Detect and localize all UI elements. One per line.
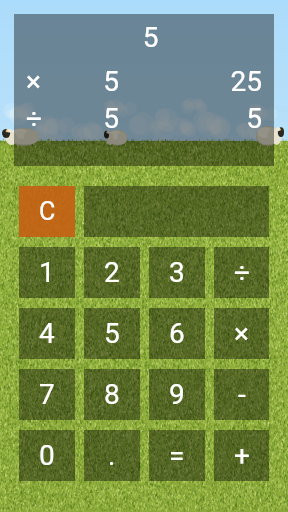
button[interactable]: + bbox=[214, 430, 269, 481]
staticText: = bbox=[169, 439, 185, 472]
staticText: ÷ bbox=[26, 102, 42, 135]
staticText: 5 bbox=[174, 102, 262, 135]
button[interactable]: - bbox=[214, 369, 269, 420]
staticText: 8 bbox=[104, 378, 120, 411]
staticText: × bbox=[26, 65, 41, 98]
button[interactable]: 1 bbox=[19, 247, 75, 298]
button[interactable]: ÷ bbox=[214, 247, 269, 298]
staticText: 25 bbox=[174, 65, 262, 98]
staticText: . bbox=[108, 439, 116, 472]
staticText: 5 bbox=[28, 21, 273, 54]
button[interactable]: 8 bbox=[84, 369, 140, 420]
staticText: 0 bbox=[39, 439, 55, 472]
staticText: 3 bbox=[169, 256, 185, 289]
staticText: C bbox=[39, 197, 56, 226]
staticText: 4 bbox=[39, 317, 55, 350]
staticText: ÷ bbox=[234, 256, 250, 289]
button[interactable]: 7 bbox=[19, 369, 75, 420]
staticText: 1 bbox=[39, 256, 55, 289]
staticText: 6 bbox=[169, 317, 185, 350]
button[interactable]: 0 bbox=[19, 430, 75, 481]
button[interactable]: = bbox=[149, 430, 205, 481]
button[interactable]: C bbox=[19, 186, 75, 237]
button[interactable]: . bbox=[84, 430, 140, 481]
button[interactable]: × bbox=[214, 308, 269, 359]
button[interactable]: 6 bbox=[149, 308, 205, 359]
staticText: 9 bbox=[169, 378, 185, 411]
staticText: 5 bbox=[104, 317, 120, 350]
button[interactable]: 9 bbox=[149, 369, 205, 420]
staticText: 5 bbox=[90, 102, 132, 135]
staticText: 7 bbox=[39, 378, 55, 411]
button[interactable]: 2 bbox=[84, 247, 140, 298]
staticText: + bbox=[234, 439, 250, 472]
button[interactable]: 3 bbox=[149, 247, 205, 298]
staticText: 5 bbox=[90, 65, 132, 98]
button[interactable]: 4 bbox=[19, 308, 75, 359]
button[interactable]: Input field bbox=[84, 186, 269, 237]
staticText: - bbox=[238, 378, 246, 411]
button[interactable]: 5 bbox=[84, 308, 140, 359]
staticText: 2 bbox=[104, 256, 120, 289]
staticText: × bbox=[234, 317, 249, 350]
